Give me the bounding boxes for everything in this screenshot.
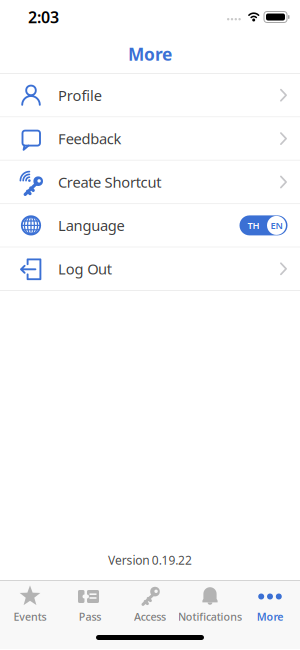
staticText: TH (247, 219, 259, 232)
staticText: Version 0.19.22 (108, 552, 192, 568)
button[interactable]: Language (0, 204, 300, 247)
staticText: 2:03 (28, 6, 59, 28)
staticText: Pass (79, 609, 101, 624)
staticText: Language (58, 216, 125, 235)
button[interactable]: Log Out (0, 248, 300, 290)
staticText: Feedback (58, 129, 122, 148)
button[interactable]: More (240, 581, 300, 622)
staticText: Create Shortcut (58, 172, 161, 192)
staticText: More (128, 42, 172, 65)
button[interactable]: Notifications (180, 581, 240, 622)
button[interactable]: Switch language between Thai and English (239, 215, 287, 235)
staticText: More (257, 609, 283, 624)
button[interactable]: Events (0, 581, 60, 622)
button[interactable]: Create Shortcut (0, 161, 300, 203)
staticText: Profile (58, 85, 102, 105)
staticText: Log Out (58, 259, 112, 279)
staticText: Access (134, 609, 166, 624)
staticText: Notifications (178, 609, 242, 624)
button[interactable]: Profile (0, 74, 300, 116)
staticText: Events (13, 609, 47, 624)
button[interactable]: Access (120, 581, 180, 622)
staticText: EN (270, 219, 282, 232)
button[interactable]: Pass (60, 581, 120, 622)
button[interactable]: Feedback (0, 117, 300, 160)
